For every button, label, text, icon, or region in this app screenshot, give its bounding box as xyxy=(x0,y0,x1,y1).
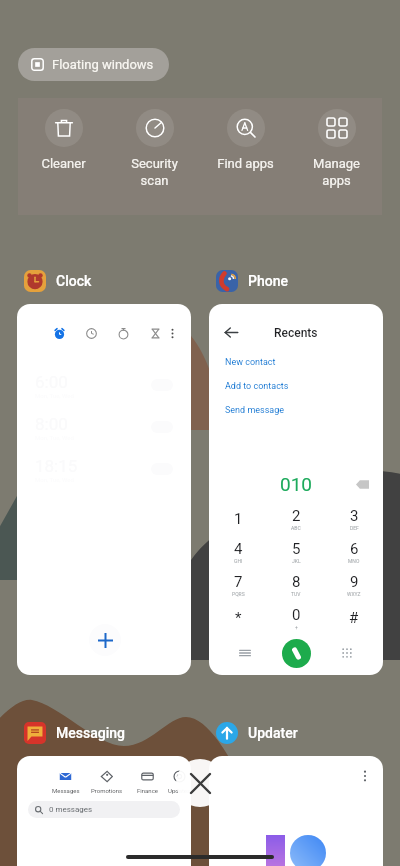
button[interactable]: Cleaner xyxy=(18,98,109,215)
button[interactable]: 7 xyxy=(209,568,267,601)
button[interactable]: 6 xyxy=(325,535,383,568)
other: Clock xyxy=(86,328,97,339)
button[interactable]: 0 xyxy=(267,601,325,634)
button[interactable]: 4 xyxy=(209,535,267,568)
staticText: Updates xyxy=(168,787,191,794)
button[interactable]: Security scan xyxy=(109,98,200,215)
button[interactable]: 2 xyxy=(267,502,325,535)
staticText: ABC xyxy=(291,525,301,531)
button[interactable]: Close all xyxy=(176,759,224,807)
button[interactable]: Finance xyxy=(127,770,168,794)
staticText: 9 xyxy=(350,573,359,591)
button[interactable]: Floating windows xyxy=(18,48,169,81)
button[interactable]: New contact xyxy=(209,350,383,374)
staticText: Add to contacts xyxy=(225,381,289,392)
button[interactable]: Updater xyxy=(216,722,298,744)
button[interactable]: Back xyxy=(209,304,383,675)
staticText: Recents xyxy=(274,326,318,340)
button[interactable]: Call xyxy=(282,639,311,668)
staticText: WXYZ xyxy=(347,591,361,597)
button[interactable]: Keypad menu xyxy=(232,640,258,666)
staticText: New contact xyxy=(225,357,276,368)
staticText: 3 xyxy=(350,507,359,525)
button[interactable]: Add alarm xyxy=(89,624,121,656)
staticText: PQRS xyxy=(232,591,245,597)
button[interactable]: Phone xyxy=(216,270,288,292)
button[interactable]: # xyxy=(325,601,383,634)
button[interactable]: Send message xyxy=(209,398,383,422)
button[interactable]: Messages xyxy=(17,756,191,866)
button[interactable]: * xyxy=(209,601,267,634)
staticText: 1 xyxy=(234,510,243,528)
button[interactable]: 5 xyxy=(267,535,325,568)
staticText: 8 xyxy=(292,573,301,591)
staticText: JKL xyxy=(292,558,301,564)
staticText: Messaging xyxy=(56,725,125,741)
staticText: 7 xyxy=(234,573,243,591)
staticText: + xyxy=(295,624,298,630)
staticText: Cleaner xyxy=(41,156,86,171)
button[interactable]: Alarm xyxy=(17,304,191,675)
button[interactable]: 3 xyxy=(325,502,383,535)
button[interactable]: More options xyxy=(209,756,383,866)
staticText: 0 messages xyxy=(49,805,93,814)
button[interactable]: Clock xyxy=(24,270,92,292)
button[interactable]: Promotions xyxy=(86,770,127,794)
other: Stopwatch xyxy=(118,328,129,339)
staticText: DEF xyxy=(350,525,359,531)
staticText: Manage apps xyxy=(313,156,360,189)
other: Backspace xyxy=(356,478,369,491)
button[interactable]: 8 xyxy=(267,568,325,601)
button[interactable]: Find apps xyxy=(200,98,291,215)
button[interactable]: Updates xyxy=(168,770,191,794)
staticText: * xyxy=(235,609,242,627)
staticText: 010 xyxy=(280,473,313,495)
staticText: Promotions xyxy=(91,787,123,794)
staticText: Updater xyxy=(248,725,298,741)
button[interactable]: Messaging xyxy=(24,722,125,744)
button[interactable]: 0 messages xyxy=(28,801,180,818)
staticText: Floating windows xyxy=(52,57,154,72)
staticText: Finance xyxy=(137,787,158,794)
button[interactable]: Dialpad xyxy=(334,640,360,666)
button[interactable]: Messages xyxy=(45,770,86,794)
staticText: Send message xyxy=(225,405,285,416)
staticText: # xyxy=(349,609,359,627)
other: More options xyxy=(167,328,178,339)
other: Back xyxy=(224,325,239,340)
staticText: 4 xyxy=(234,540,243,558)
staticText: 5 xyxy=(292,540,301,558)
staticText: TUV xyxy=(291,591,301,597)
staticText: MNO xyxy=(348,558,360,564)
staticText: Find apps xyxy=(217,156,274,171)
button[interactable]: Add to contacts xyxy=(209,374,383,398)
staticText: GHI xyxy=(234,558,243,564)
button[interactable]: 9 xyxy=(325,568,383,601)
other: Timer xyxy=(150,328,161,339)
staticText: 6 xyxy=(350,540,359,558)
button[interactable]: 1 xyxy=(209,502,267,535)
staticText: 0 xyxy=(292,606,301,624)
staticText: Messages xyxy=(52,787,80,794)
staticText: Clock xyxy=(56,273,92,289)
other: Alarm xyxy=(54,328,65,339)
staticText: 2 xyxy=(292,507,301,525)
button[interactable]: More options xyxy=(355,766,375,786)
button[interactable]: Manage apps xyxy=(291,98,382,215)
staticText: Security scan xyxy=(131,156,178,189)
staticText: Phone xyxy=(248,273,288,289)
